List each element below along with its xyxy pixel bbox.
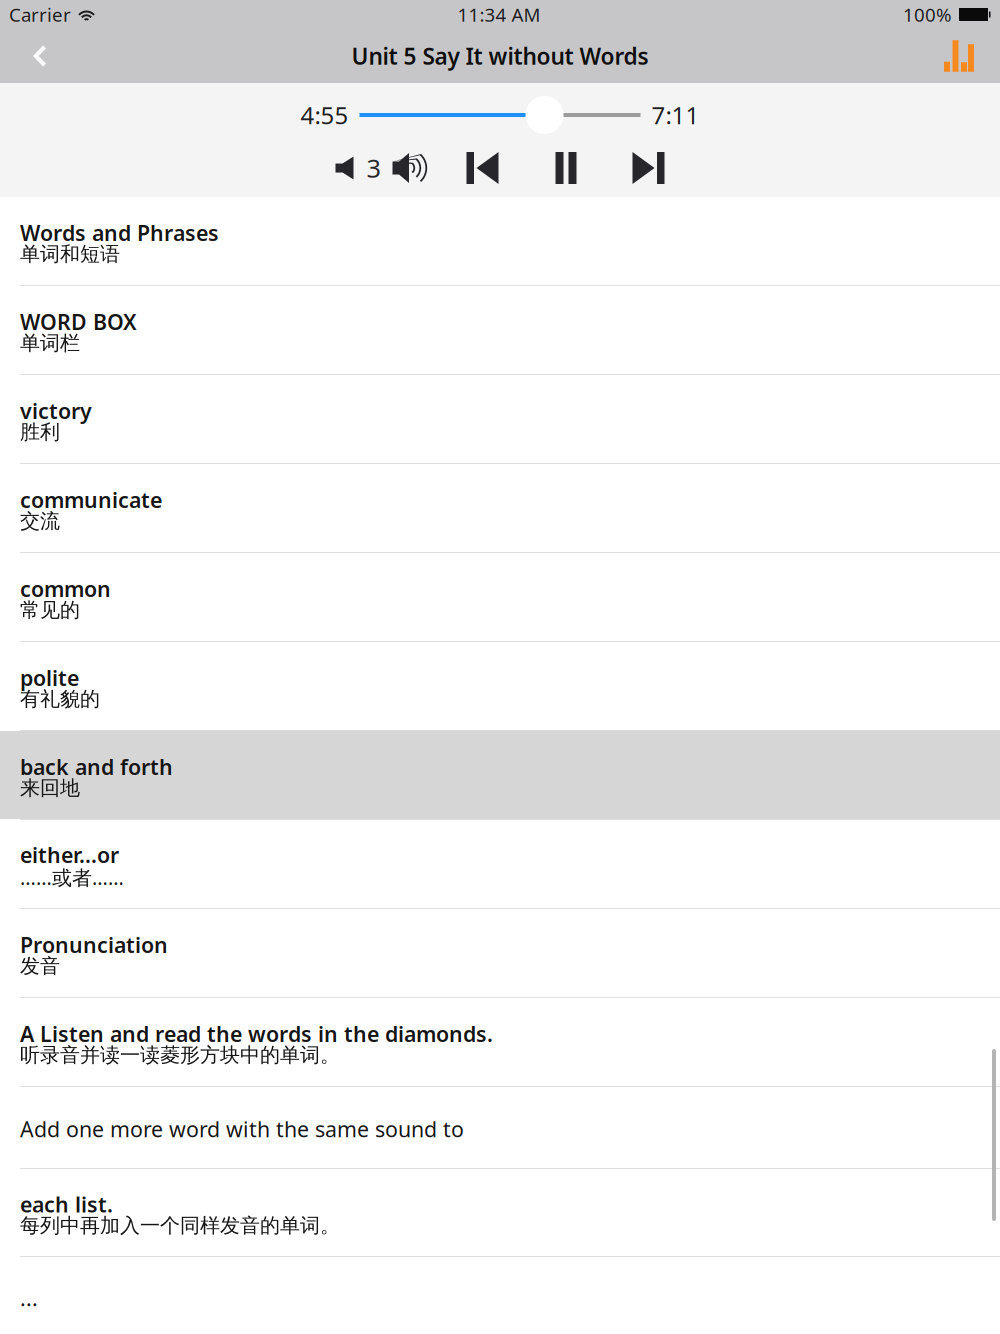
staticText: A Listen and read the words in the diamo… [20, 1020, 493, 1048]
staticText: communicate [20, 486, 162, 514]
button[interactable]: Add one more word with the same sound to [0, 1087, 1000, 1168]
staticText: 单词和短语 [20, 242, 120, 266]
staticText: 胜利 [20, 420, 60, 444]
staticText: 交流 [20, 509, 60, 533]
button[interactable]: Volume up [386, 149, 434, 187]
button[interactable]: WORD BOX [0, 286, 1000, 374]
staticText: victory [20, 397, 92, 425]
staticText: 有礼貌的 [20, 687, 100, 711]
staticText: 7:11 [651, 99, 699, 131]
staticText: Words and Phrases [20, 219, 219, 247]
button[interactable]: A Listen and read the words in the diamo… [0, 998, 1000, 1086]
staticText: 听录音并读一读菱形方块中的单词。 [20, 1043, 340, 1067]
button[interactable]: Previous [460, 149, 504, 187]
staticText: back and forth [20, 753, 173, 781]
staticText: Add one more word with the same sound to [20, 1115, 464, 1143]
button[interactable]: polite [0, 642, 1000, 730]
button[interactable]: victory [0, 375, 1000, 463]
staticText: 100% [903, 2, 952, 27]
staticText: Unit 5 Say It without Words [351, 41, 648, 71]
button[interactable]: Back [0, 29, 70, 83]
button[interactable]: Audio settings [922, 29, 1000, 83]
staticText: common [20, 575, 111, 603]
staticText: Carrier [9, 2, 71, 27]
button[interactable]: Pronunciation [0, 909, 1000, 997]
staticText: 3 [366, 151, 380, 185]
staticText: 来回地 [20, 776, 80, 800]
staticText: 11:34 AM [457, 2, 540, 27]
button[interactable]: Pause [549, 149, 582, 187]
button[interactable]: each list. [0, 1169, 1000, 1256]
button[interactable]: communicate [0, 464, 1000, 552]
staticText: 发音 [20, 954, 60, 978]
staticText: Pronunciation [20, 931, 168, 959]
button[interactable]: ... [0, 1257, 1000, 1334]
staticText: 常见的 [20, 598, 80, 622]
staticText: ... [20, 1284, 38, 1312]
button[interactable]: common [0, 553, 1000, 641]
staticText: ……或者…… [20, 864, 124, 890]
staticText: 单词栏 [20, 331, 80, 355]
button[interactable]: Next [626, 149, 670, 187]
staticText: WORD BOX [20, 308, 137, 336]
staticText: each list. [20, 1190, 113, 1218]
button[interactable]: either...or [0, 820, 1000, 908]
staticText: polite [20, 664, 79, 692]
button[interactable]: back and forth [0, 731, 1000, 819]
staticText: 4:55 [300, 99, 348, 131]
staticText: either...or [20, 841, 119, 869]
staticText: 每列中再加入一个同样发音的单词。 [20, 1213, 340, 1238]
button[interactable]: Volume down [329, 149, 359, 187]
button[interactable]: Words and Phrases [0, 197, 1000, 285]
